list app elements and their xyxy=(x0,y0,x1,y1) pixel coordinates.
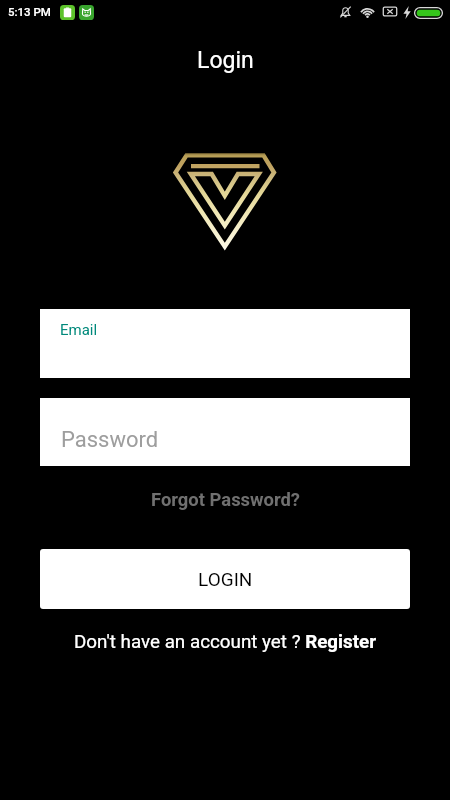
staticText: Login xyxy=(197,47,254,74)
other: Notifications muted xyxy=(339,5,352,19)
button[interactable]: Password xyxy=(40,398,410,466)
button[interactable]: Forgot Password? xyxy=(151,489,300,511)
other: Battery xyxy=(414,7,443,19)
staticText: 5:13 PM xyxy=(8,5,51,18)
staticText: Forgot Password? xyxy=(151,489,300,511)
button[interactable]: Email xyxy=(40,309,410,378)
button[interactable]: Don't have an account yet ? Register xyxy=(74,631,377,653)
staticText: Email xyxy=(60,321,98,339)
other: Wi-Fi xyxy=(359,6,376,18)
other: No SIM xyxy=(382,5,398,18)
staticText: Don't have an account yet ? Register xyxy=(74,631,377,653)
staticText: Password xyxy=(61,427,159,453)
button[interactable]: LOGIN xyxy=(40,549,410,609)
staticText: LOGIN xyxy=(198,568,253,590)
